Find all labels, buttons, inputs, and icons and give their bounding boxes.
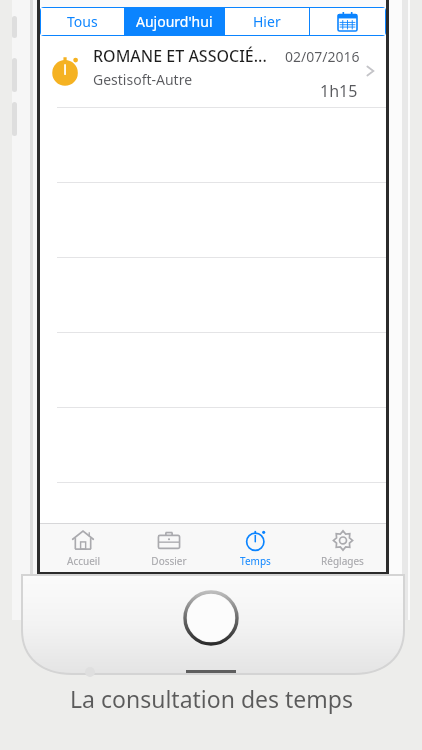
button[interactable]: Calendrier bbox=[310, 8, 385, 35]
button[interactable]: Aujourd'hui bbox=[125, 8, 224, 35]
button[interactable]: Temps bbox=[212, 524, 299, 572]
staticText: Tous bbox=[67, 12, 98, 31]
button[interactable]: Accueil bbox=[40, 524, 126, 572]
staticText: 02/07/2016 bbox=[285, 47, 360, 66]
button[interactable] bbox=[40, 183, 386, 258]
button[interactable] bbox=[40, 108, 386, 183]
staticText: Accueil bbox=[67, 554, 100, 568]
button[interactable]: ROMANE ET ASSOCIÉ... bbox=[40, 36, 386, 108]
button[interactable]: Hier bbox=[225, 8, 309, 35]
staticText: 1h15 bbox=[320, 80, 358, 102]
staticText: ROMANE ET ASSOCIÉ... bbox=[93, 45, 267, 67]
staticText: Réglages bbox=[321, 554, 364, 568]
staticText: Dossier bbox=[151, 554, 187, 568]
staticText: Gestisoft-Autre bbox=[93, 70, 193, 89]
button[interactable]: Réglages bbox=[299, 524, 386, 572]
button[interactable] bbox=[40, 258, 386, 333]
staticText: Aujourd'hui bbox=[136, 12, 213, 31]
staticText: La consultation des temps bbox=[70, 683, 353, 714]
button[interactable] bbox=[40, 333, 386, 408]
button[interactable]: Tous bbox=[41, 8, 124, 35]
staticText: Hier bbox=[253, 12, 281, 31]
button[interactable] bbox=[40, 408, 386, 483]
button[interactable]: Dossier bbox=[126, 524, 212, 572]
staticText: Temps bbox=[240, 554, 271, 568]
